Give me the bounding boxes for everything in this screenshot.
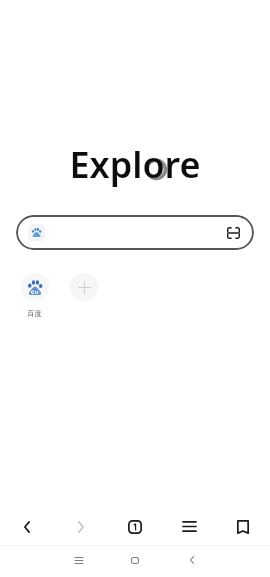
button[interactable]: Scan QR code	[224, 224, 242, 242]
button[interactable]: Menu	[162, 508, 216, 545]
staticText: Explore	[69, 140, 201, 189]
staticText: 百度	[27, 309, 42, 318]
button[interactable]: Back	[0, 508, 54, 545]
button[interactable]: System back	[176, 546, 208, 574]
button[interactable]: Bookmarks	[216, 508, 270, 545]
button[interactable]: 百度	[10, 273, 59, 318]
button[interactable]: Recents	[63, 546, 95, 574]
button[interactable]: Scan QR code	[16, 215, 254, 250]
button[interactable]: Add shortcut	[59, 273, 108, 301]
button[interactable]: Home	[119, 546, 151, 574]
button[interactable]: Tabs, 1 open	[108, 508, 162, 545]
button[interactable]: Forward	[54, 508, 108, 545]
